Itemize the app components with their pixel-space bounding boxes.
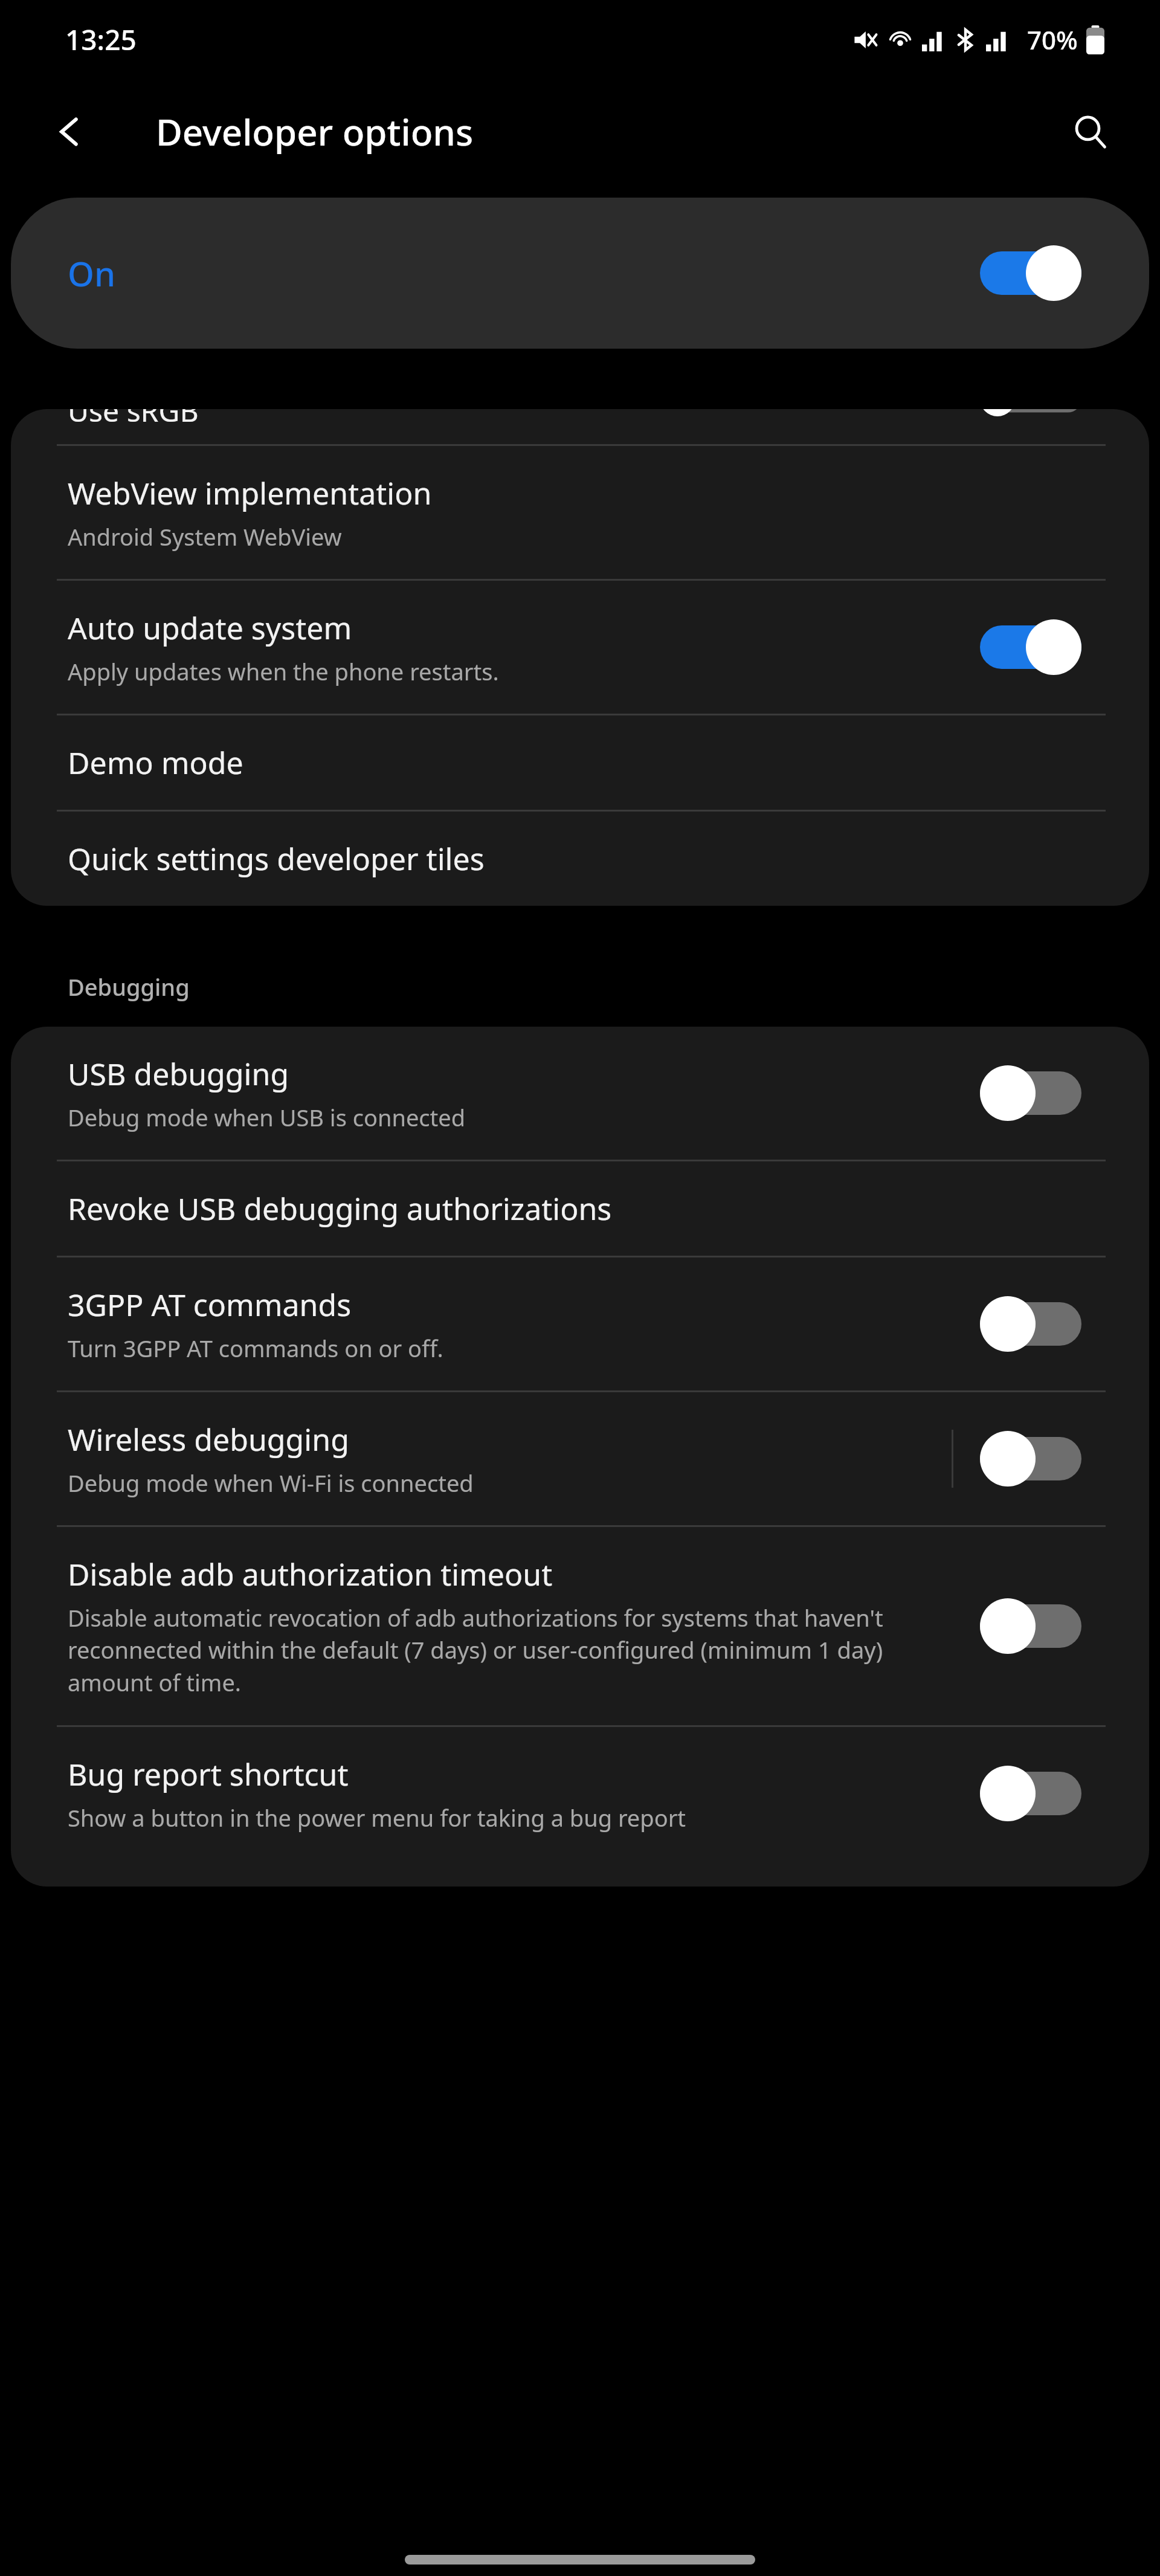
staticText: Turn 3GPP AT commands on or off. xyxy=(68,1332,443,1364)
button[interactable]: Demo mode xyxy=(11,715,1149,810)
staticText: 3GPP AT commands xyxy=(68,1284,352,1325)
button[interactable]: 3GPP AT commands xyxy=(11,1257,1149,1390)
staticText: Show a button in the power menu for taki… xyxy=(68,1802,686,1833)
button[interactable]: Revoke USB debugging authorizations xyxy=(11,1161,1149,1256)
staticText: Debug mode when USB is connected xyxy=(68,1102,466,1133)
staticText: Revoke USB debugging authorizations xyxy=(68,1188,612,1229)
button[interactable]: USB debugging xyxy=(11,1027,1149,1160)
staticText: WebView implementation xyxy=(68,473,432,514)
staticText: Disable adb authorization timeout xyxy=(68,1554,553,1595)
staticText: Wireless debugging xyxy=(68,1419,349,1460)
staticText: Quick settings developer tiles xyxy=(68,838,485,879)
staticText: 70% xyxy=(1027,22,1078,57)
button[interactable]: Wireless debugging xyxy=(11,1392,1149,1525)
staticText: Demo mode xyxy=(68,742,243,783)
staticText: Bug report shortcut xyxy=(68,1754,349,1795)
staticText: Developer options xyxy=(156,107,474,157)
button[interactable]: Quick settings developer tiles xyxy=(11,812,1149,906)
button[interactable]: Auto update system xyxy=(11,581,1149,714)
button[interactable]: On xyxy=(11,198,1149,349)
staticText: Debug mode when Wi-Fi is connected xyxy=(68,1467,474,1499)
staticText: Android System WebView xyxy=(68,521,342,552)
button[interactable]: Search xyxy=(1057,98,1124,165)
button[interactable]: Back xyxy=(36,98,103,165)
button[interactable]: WebView implementation xyxy=(11,446,1149,579)
button[interactable]: Use sRGB xyxy=(11,409,1149,444)
button[interactable]: Disable adb authorization timeout xyxy=(11,1527,1149,1725)
staticText: On xyxy=(68,250,116,296)
staticText: Use sRGB xyxy=(68,409,199,426)
staticText: Apply updates when the phone restarts. xyxy=(68,656,499,687)
staticText: Debugging xyxy=(68,971,190,1002)
staticText: Disable automatic revocation of adb auth… xyxy=(68,1602,956,1699)
button[interactable]: Bug report shortcut xyxy=(11,1727,1149,1860)
staticText: 13:25 xyxy=(65,21,137,59)
staticText: Auto update system xyxy=(68,607,352,648)
staticText: USB debugging xyxy=(68,1053,289,1094)
